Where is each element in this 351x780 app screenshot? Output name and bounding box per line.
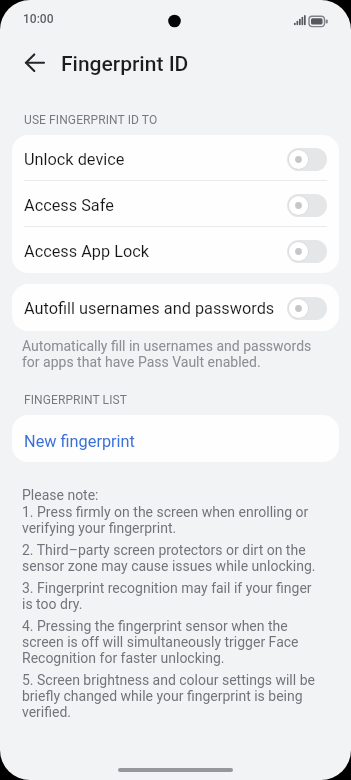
button[interactable]: Access App Lock	[12, 227, 339, 273]
staticText: 1. Press firmly on the screen when enrol…	[22, 504, 309, 536]
staticText: 4. Pressing the fingerprint sensor when …	[22, 618, 299, 666]
staticText: Unlock device	[24, 150, 125, 169]
staticText: Fingerprint ID	[61, 52, 189, 77]
staticText: Access Safe	[24, 196, 114, 215]
button[interactable]: Autofill usernames and passwords	[12, 284, 339, 331]
staticText: Access App Lock	[24, 242, 150, 261]
staticText: Automatically fill in usernames and pass…	[22, 338, 312, 370]
staticText: 10:00	[23, 12, 54, 26]
button[interactable]	[18, 47, 52, 81]
staticText: 2. Third–party screen protectors or dirt…	[22, 542, 316, 574]
button[interactable]: New fingerprint	[12, 415, 339, 462]
staticText: New fingerprint	[24, 432, 135, 451]
staticText: USE FINGERPRINT ID TO	[24, 113, 158, 127]
staticText: Autofill usernames and passwords	[24, 299, 275, 318]
button[interactable]: Access Safe	[12, 181, 339, 227]
button[interactable]: Unlock device	[12, 135, 339, 181]
staticText: Please note:	[22, 487, 99, 503]
staticText: 3. Fingerprint recognition may fail if y…	[22, 580, 312, 612]
staticText: 5. Screen brightness and colour settings…	[22, 672, 315, 720]
staticText: FINGERPRINT LIST	[24, 393, 127, 407]
